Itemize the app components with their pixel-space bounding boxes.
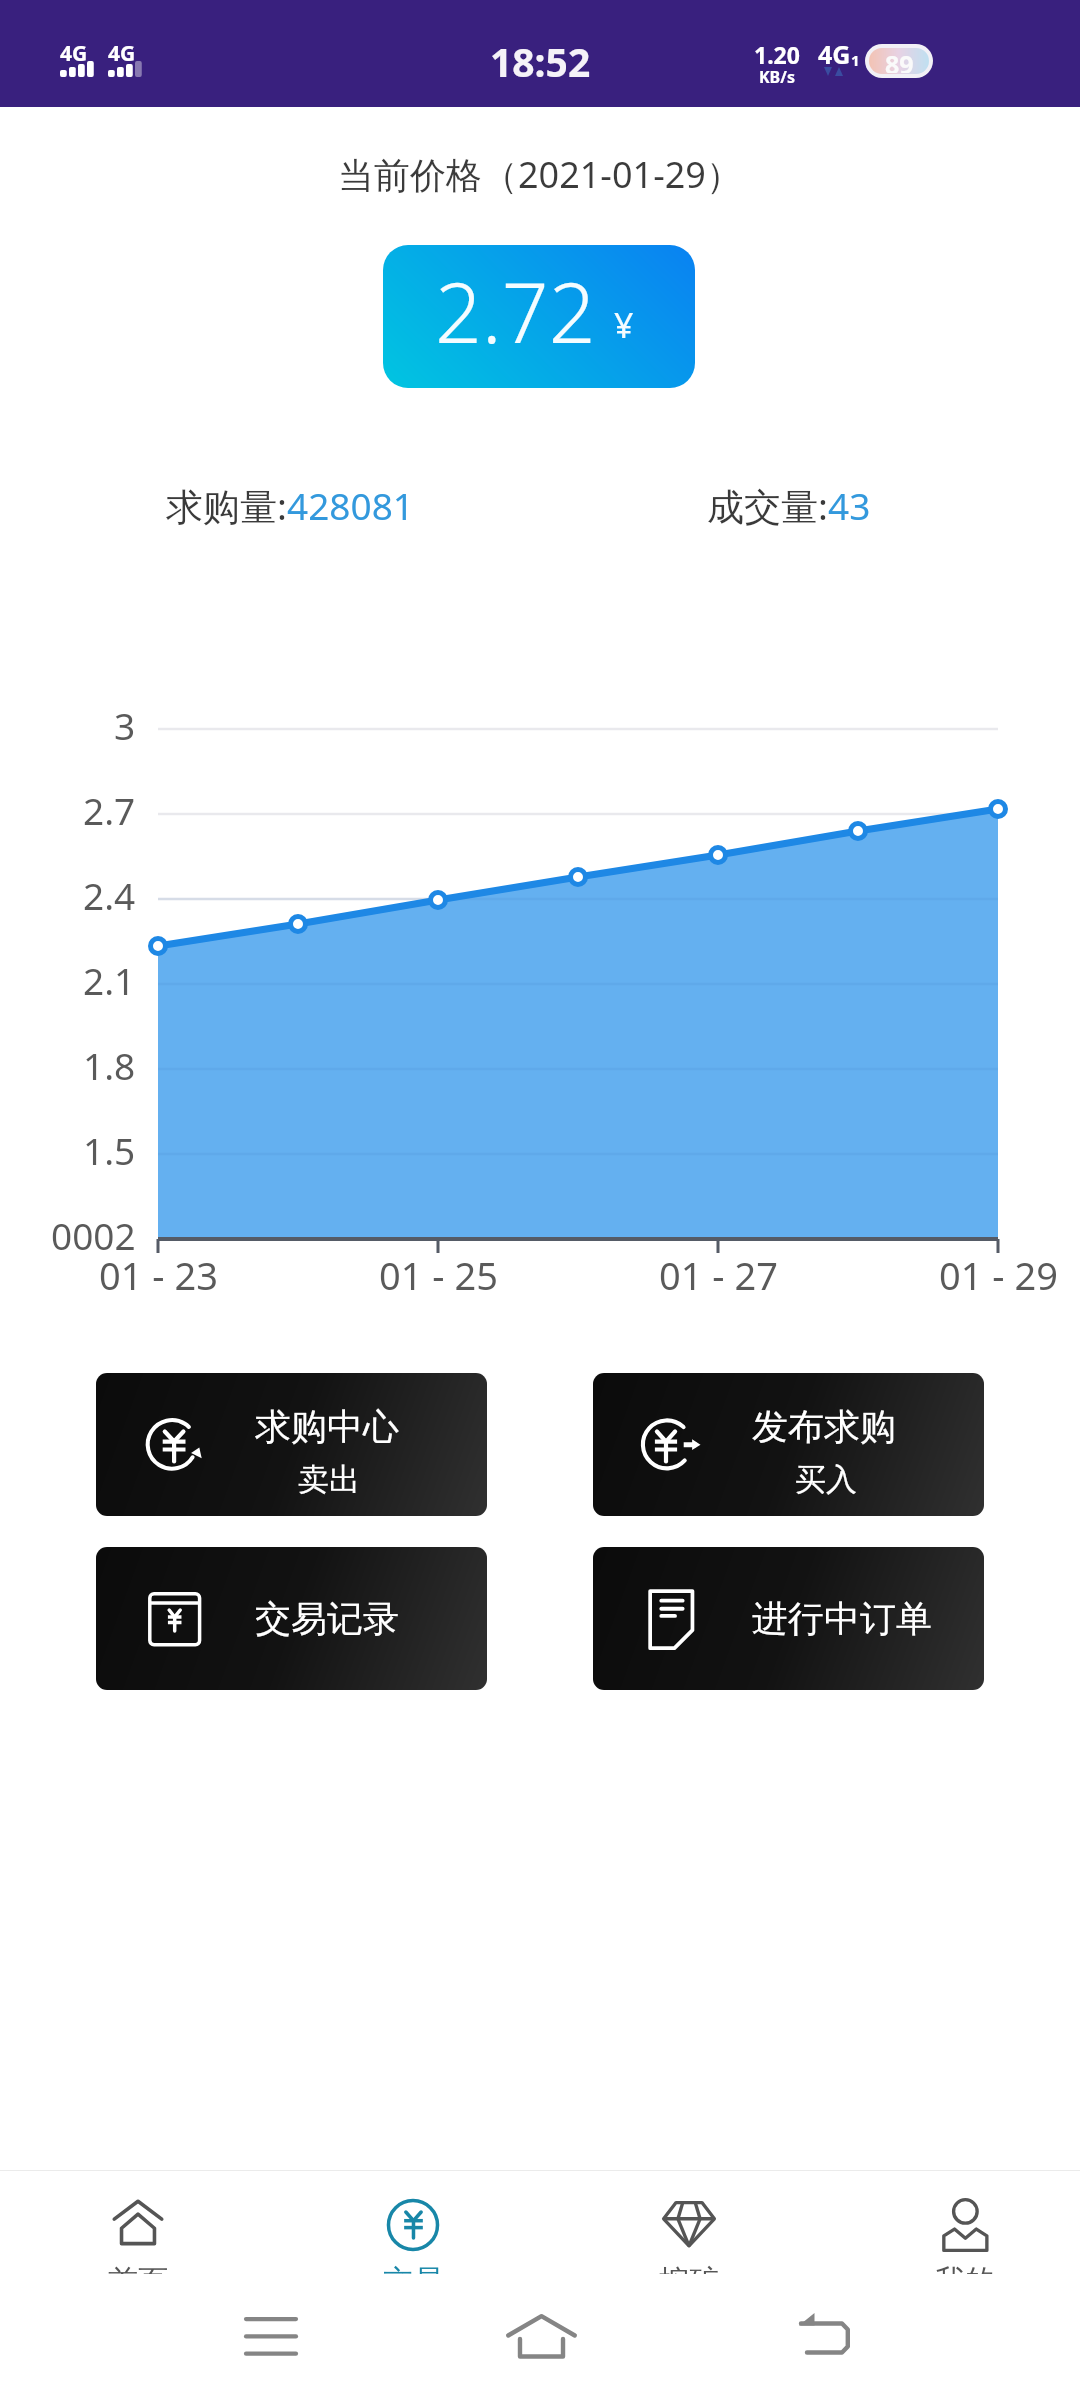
staticText: 428081: [287, 480, 414, 530]
staticText: 求购中心: [255, 1404, 399, 1449]
staticText: ¥: [614, 302, 634, 348]
button[interactable]: Recent apps: [151, 2274, 391, 2400]
staticText: 1.5: [83, 1125, 136, 1175]
button[interactable]: 交易记录: [96, 1547, 487, 1690]
button[interactable]: 发布求购: [593, 1373, 984, 1516]
button[interactable]: Home: [421, 2274, 661, 2400]
staticText: 发布求购: [752, 1404, 896, 1449]
staticText: 4G: [60, 39, 88, 68]
staticText: 2.7: [83, 785, 136, 835]
button[interactable]: 我的: [830, 2171, 1080, 2274]
staticText: KB/s: [759, 66, 795, 88]
staticText: 1: [851, 50, 860, 70]
staticText: 01 - 29: [939, 1249, 1058, 1301]
button[interactable]: Back: [704, 2274, 944, 2400]
staticText: 01 - 27: [659, 1249, 778, 1301]
staticText: 挖矿: [659, 2262, 719, 2274]
button[interactable]: 首页: [3, 2171, 273, 2274]
staticText: 买入: [795, 1460, 857, 1499]
staticText: 4G: [108, 39, 136, 68]
staticText: 0002: [51, 1210, 136, 1260]
staticText: 89: [885, 48, 914, 73]
staticText: 01 - 25: [379, 1249, 498, 1301]
staticText: 4G: [818, 37, 851, 71]
button[interactable]: 挖矿: [554, 2171, 824, 2274]
staticText: 成交量:: [707, 480, 828, 531]
staticText: 1.8: [83, 1040, 136, 1090]
staticText: 卖出: [298, 1460, 360, 1499]
staticText: 我的: [935, 2262, 995, 2274]
staticText: 交易记录: [255, 1596, 399, 1641]
staticText: 01 - 23: [99, 1249, 218, 1301]
staticText: 交易: [383, 2262, 443, 2274]
staticText: 当前价格（2021-01-29）: [338, 150, 742, 199]
staticText: 2.4: [83, 870, 136, 920]
staticText: 43: [828, 480, 871, 530]
staticText: 3: [114, 700, 136, 750]
staticText: 18:52: [490, 35, 591, 88]
button[interactable]: 交易: [278, 2171, 548, 2274]
staticText: 2.72: [435, 255, 596, 367]
staticText: 求购量:: [166, 480, 287, 531]
button[interactable]: 求购中心: [96, 1373, 487, 1516]
button[interactable]: 进行中订单: [593, 1547, 984, 1690]
staticText: 首页: [108, 2262, 168, 2274]
staticText: 2.1: [83, 955, 136, 1005]
staticText: 进行中订单: [752, 1596, 932, 1641]
staticText: 1.20: [754, 39, 800, 70]
